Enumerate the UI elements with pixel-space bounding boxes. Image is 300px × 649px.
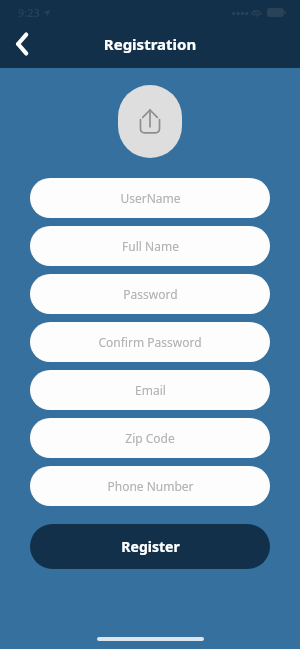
staticText: UserName (120, 190, 181, 206)
staticText: Zip Code (125, 430, 175, 446)
staticText: Phone Number (107, 478, 194, 494)
staticText: 9:23 (18, 5, 40, 20)
button[interactable]: UserName (30, 178, 270, 218)
staticText: Full Name (122, 238, 179, 254)
button[interactable]: Register (30, 524, 270, 569)
staticText: Register (121, 537, 180, 556)
staticText: Registration (0, 34, 300, 54)
staticText: Password (123, 286, 178, 302)
button[interactable]: Back (0, 22, 44, 66)
staticText: Confirm Password (98, 334, 202, 350)
staticText: Email (135, 382, 166, 398)
button[interactable]: Confirm Password (30, 322, 270, 362)
button[interactable]: Password (30, 274, 270, 314)
button[interactable]: Zip Code (30, 418, 270, 458)
button[interactable]: Upload profile photo (118, 85, 182, 158)
button[interactable]: Phone Number (30, 466, 270, 506)
button[interactable]: Email (30, 370, 270, 410)
button[interactable]: Full Name (30, 226, 270, 266)
